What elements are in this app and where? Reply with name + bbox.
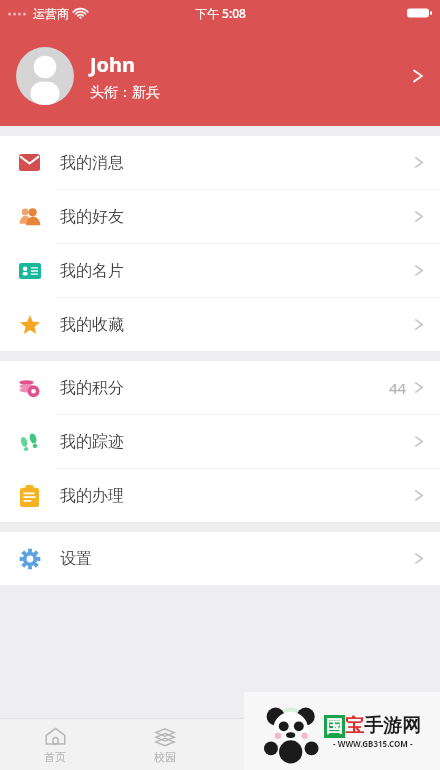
button[interactable]: 我的名片 (0, 244, 440, 297)
button[interactable]: 我的办理 (0, 469, 440, 522)
staticText: 我的积分 (60, 378, 124, 398)
button[interactable]: 我的积分 (0, 361, 440, 414)
staticText: 我的办理 (60, 486, 124, 506)
button[interactable]: 首页 (0, 719, 110, 770)
staticText: 我的消息 (60, 153, 124, 173)
staticText: 发现 (264, 750, 286, 764)
staticText: 我的名片 (60, 261, 124, 281)
staticText: 设置 (60, 549, 92, 569)
button[interactable]: 我的踪迹 (0, 415, 440, 468)
button[interactable]: 设置 (0, 532, 440, 585)
staticText: 手游网 (364, 714, 421, 738)
staticText: 下午 5:08 (195, 5, 246, 21)
button[interactable]: 我的收藏 (0, 298, 440, 351)
button[interactable]: 发现 (220, 719, 330, 770)
staticText: 44 (389, 378, 407, 398)
staticText: 宝 (345, 714, 364, 738)
button[interactable]: 校园 (110, 719, 220, 770)
button[interactable]: 我的 (330, 719, 440, 770)
staticText: 头衔：新兵 (90, 84, 160, 102)
staticText: 国 (326, 716, 343, 737)
staticText: 首页 (44, 750, 66, 764)
button[interactable]: 我的消息 (0, 136, 440, 189)
staticText: 我的踪迹 (60, 432, 124, 452)
button[interactable]: John (0, 26, 440, 126)
staticText: 我的好友 (60, 207, 124, 227)
staticText: 我的收藏 (60, 315, 124, 335)
staticText: - WWW.GB315.COM - (333, 738, 413, 749)
staticText: 运营商 (33, 6, 69, 21)
staticText: 校园 (154, 750, 176, 764)
button[interactable]: 我的好友 (0, 190, 440, 243)
staticText: John (90, 51, 136, 78)
